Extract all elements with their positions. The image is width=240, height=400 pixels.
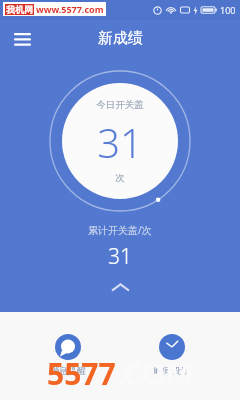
staticText: 5577 xyxy=(47,353,116,394)
staticText: 今日开关盖 xyxy=(96,99,144,111)
staticText: 31 xyxy=(108,242,132,271)
staticText: 时间设置 xyxy=(154,365,190,376)
button[interactable]: 时间设置 xyxy=(135,332,209,378)
button[interactable]: 消息提醒 xyxy=(31,332,105,378)
button[interactable]: 今日开关盖 31 次 xyxy=(49,70,191,212)
staticText: 31 xyxy=(97,115,143,169)
staticText: 新成绩 xyxy=(98,29,143,48)
staticText: 次 xyxy=(115,172,125,184)
staticText: 累计开关盖/次 xyxy=(88,223,152,237)
staticText: 我机网 xyxy=(6,4,33,15)
staticText: .COM xyxy=(116,353,194,394)
staticText: 100 xyxy=(220,4,236,16)
button[interactable]: Expand xyxy=(100,278,140,296)
staticText: www.5577.com xyxy=(36,3,104,15)
button[interactable]: Menu xyxy=(8,25,36,53)
staticText: 消息提醒 xyxy=(50,365,86,376)
